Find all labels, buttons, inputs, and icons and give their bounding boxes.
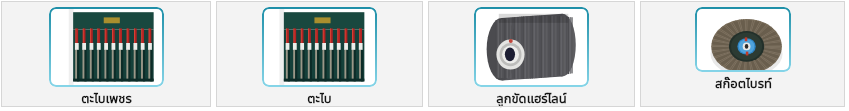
- staticText: สก๊อตไบรท์: [715, 74, 772, 92]
- button[interactable]: สก๊อตไบรท์: [640, 1, 845, 107]
- button[interactable]: ตะไบเพชร: [1, 1, 211, 107]
- button[interactable]: ตะไบ: [216, 1, 423, 107]
- staticText: ลูกขัดแฮร์ไลน์: [496, 89, 567, 107]
- staticText: ตะไบ: [307, 89, 332, 107]
- button[interactable]: ลูกขัดแฮร์ไลน์: [428, 1, 635, 107]
- staticText: ตะไบเพชร: [81, 89, 132, 107]
